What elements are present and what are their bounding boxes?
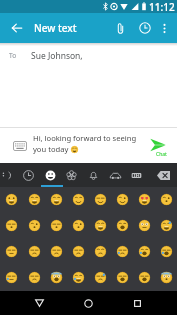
button[interactable]: Emoji [23, 186, 45, 212]
staticText: Sue Johnson, [31, 50, 83, 62]
staticText: To [9, 51, 17, 60]
button[interactable]: Backspace [150, 163, 175, 187]
button[interactable]: Emoji [155, 186, 177, 212]
button[interactable]: Emoji [67, 264, 89, 290]
button[interactable]: Emoji [23, 264, 45, 290]
button[interactable]: Emoji [67, 238, 89, 264]
button[interactable]: Emoji [45, 212, 67, 238]
button[interactable]: Emoji [0, 264, 23, 290]
button[interactable]: Emoji [23, 212, 45, 238]
button[interactable]: Emoji [133, 238, 155, 264]
button[interactable]: More options [153, 13, 175, 43]
button[interactable]: Attach [109, 13, 131, 43]
button[interactable]: Emoji [45, 264, 67, 290]
button[interactable]: Emoji [155, 264, 177, 290]
button[interactable]: Emoji [0, 238, 23, 264]
button[interactable]: Emoji [89, 264, 111, 290]
button[interactable]: Emoji [111, 264, 133, 290]
staticText: you today [33, 144, 71, 154]
button[interactable]: Send chat message [145, 128, 175, 163]
button[interactable]: Travel [104, 163, 126, 187]
button[interactable]: Emoji [111, 212, 133, 238]
button[interactable]: Home [74, 291, 102, 315]
button[interactable]: Symbols [125, 163, 147, 187]
button[interactable]: Emoji [23, 238, 45, 264]
button[interactable]: Emoji [0, 186, 23, 212]
button[interactable]: Nature [60, 163, 82, 187]
button[interactable]: Recent apps [123, 291, 151, 315]
button[interactable]: Emoji [89, 186, 111, 212]
button[interactable]: Emoji [67, 186, 89, 212]
button[interactable]: Recent [17, 163, 39, 187]
button[interactable]: To [0, 46, 177, 65]
button[interactable]: Schedule send [134, 13, 156, 43]
staticText: New text [34, 21, 77, 35]
button[interactable]: Emoticons [0, 163, 17, 187]
button[interactable]: Emoji [133, 212, 155, 238]
button[interactable]: Emoji [155, 238, 177, 264]
button[interactable]: Emoji [45, 186, 67, 212]
button[interactable]: Emoji [133, 264, 155, 290]
staticText: Chat [156, 151, 167, 158]
button[interactable]: Emoji [67, 212, 89, 238]
button[interactable]: Emoji [133, 186, 155, 212]
button[interactable]: Back [25, 291, 53, 315]
button[interactable]: Emoji [155, 212, 177, 238]
button[interactable]: Notifications [82, 163, 104, 187]
button[interactable]: Keyboard [0, 128, 33, 163]
button[interactable]: Smileys [39, 163, 61, 187]
button[interactable]: Emoji [111, 238, 133, 264]
staticText: 11:12 [149, 0, 175, 13]
button[interactable]: New text [31, 13, 101, 43]
button[interactable]: Emoji [89, 212, 111, 238]
button[interactable]: Emoji [45, 238, 67, 264]
button[interactable]: Emoji [89, 238, 111, 264]
button[interactable]: Back [3, 13, 31, 43]
button[interactable]: Emoji [111, 186, 133, 212]
staticText: Hi, looking forward to seeing [33, 133, 137, 143]
button[interactable]: Emoji [0, 212, 23, 238]
